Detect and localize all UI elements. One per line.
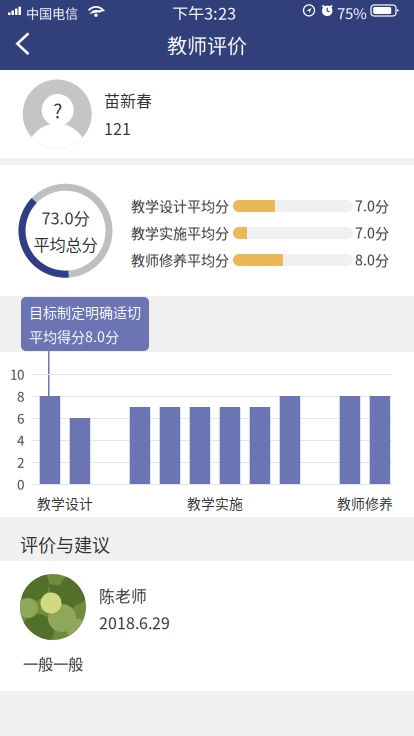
staticText: 目标制定明确适切 bbox=[29, 302, 141, 322]
staticText: 陈老师 bbox=[99, 584, 147, 607]
staticText: 73.0分 bbox=[41, 206, 89, 229]
staticText: 教师修养平均分 bbox=[131, 249, 229, 270]
staticText: 8 bbox=[17, 386, 24, 406]
staticText: 教学设计平均分 bbox=[131, 195, 229, 216]
staticText: 评价与建议 bbox=[20, 531, 110, 557]
staticText: 6 bbox=[17, 408, 24, 428]
staticText: 121 bbox=[104, 116, 131, 140]
staticText: 2018.6.29 bbox=[99, 611, 170, 634]
staticText: ? bbox=[53, 96, 62, 124]
staticText: 4 bbox=[17, 430, 24, 450]
staticText: 10 bbox=[10, 364, 24, 384]
staticText: 中国电信 bbox=[26, 3, 78, 22]
staticText: 平均总分 bbox=[33, 232, 97, 256]
staticText: 教学实施 bbox=[187, 493, 243, 513]
staticText: 7.0分 bbox=[355, 222, 389, 243]
staticText: 教师修养 bbox=[337, 493, 393, 513]
staticText: 苗新春 bbox=[104, 88, 152, 112]
staticText: 教学实施平均分 bbox=[131, 222, 229, 243]
staticText: 平均得分8.0分 bbox=[29, 326, 119, 346]
staticText: 教学设计 bbox=[37, 493, 93, 513]
staticText: 一般一般 bbox=[23, 652, 83, 674]
staticText: 下午3:23 bbox=[172, 1, 236, 25]
staticText: 0 bbox=[17, 474, 24, 494]
staticText: 8.0分 bbox=[355, 249, 389, 270]
staticText: 75% bbox=[337, 2, 367, 24]
staticText: 教师评价 bbox=[167, 30, 247, 59]
button[interactable]: Back bbox=[5, 22, 51, 66]
staticText: 2 bbox=[17, 452, 24, 472]
staticText: 7.0分 bbox=[355, 195, 389, 216]
